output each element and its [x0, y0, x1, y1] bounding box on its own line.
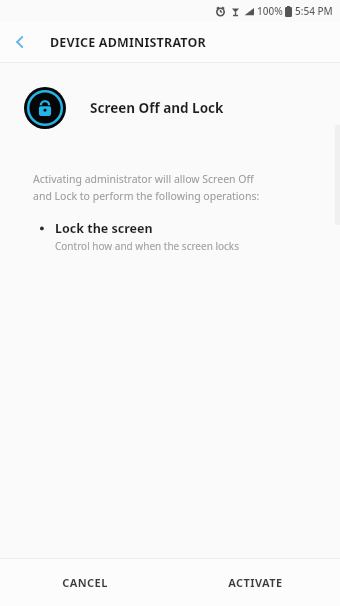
button[interactable]: CANCEL — [0, 559, 170, 606]
staticText: Activating administrator will allow Scre… — [33, 172, 260, 203]
staticText: Screen Off and Lock — [90, 99, 224, 117]
button[interactable]: Back — [0, 22, 40, 62]
staticText: 100% — [257, 4, 283, 18]
staticText: Lock the screen — [55, 220, 153, 237]
button[interactable]: ACTIVATE — [170, 559, 340, 606]
staticText: DEVICE ADMINISTRATOR — [50, 34, 207, 51]
staticText: Control how and when the screen locks — [55, 239, 239, 253]
staticText: ACTIVATE — [228, 575, 283, 590]
staticText: 5:54 PM — [295, 4, 333, 18]
staticText: CANCEL — [62, 575, 108, 590]
